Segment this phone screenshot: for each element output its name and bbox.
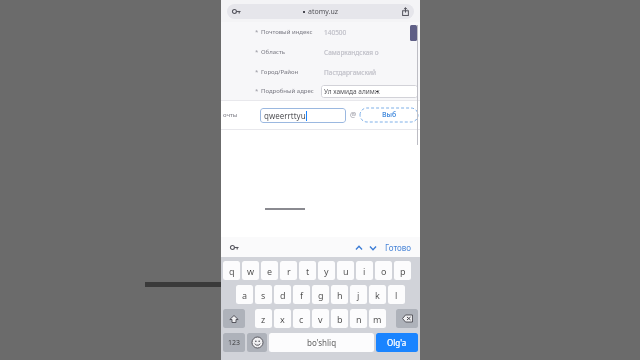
button[interactable]: i xyxy=(356,261,373,280)
staticText: u xyxy=(343,265,349,277)
button[interactable]: z xyxy=(255,309,272,328)
button[interactable]: Самаркандская о xyxy=(321,46,418,59)
staticText: c xyxy=(299,313,304,325)
staticText: qweerrttyu xyxy=(264,110,306,121)
staticText: Ул хамида алимж xyxy=(324,87,380,96)
staticText: Выб xyxy=(382,110,397,120)
staticText: e xyxy=(267,265,273,277)
button[interactable]: r xyxy=(280,261,297,280)
button[interactable]: 140500 xyxy=(321,26,418,39)
staticText: Почтовый индекс xyxy=(261,28,313,36)
staticText: * xyxy=(255,48,259,56)
button[interactable]: k xyxy=(369,285,386,304)
button[interactable]: v xyxy=(312,309,329,328)
button[interactable]: atomy.uz xyxy=(227,4,414,19)
button[interactable]: u xyxy=(337,261,354,280)
staticText: h xyxy=(337,289,343,301)
button[interactable]: f xyxy=(293,285,310,304)
button[interactable]: h xyxy=(331,285,348,304)
staticText: p xyxy=(400,265,406,277)
button[interactable]: Passwords xyxy=(228,241,240,253)
staticText: t xyxy=(306,265,310,277)
button[interactable]: Shift xyxy=(223,309,245,328)
staticText: b xyxy=(337,313,343,325)
staticText: f xyxy=(300,289,304,301)
staticText: d xyxy=(280,289,286,301)
staticText: * xyxy=(255,68,259,76)
staticText: w xyxy=(247,265,255,277)
staticText: z xyxy=(261,313,266,325)
button[interactable]: Пастдаргамский xyxy=(321,66,418,79)
button[interactable]: j xyxy=(350,285,367,304)
button[interactable]: Backspace xyxy=(396,309,418,328)
staticText: n xyxy=(356,313,362,325)
button[interactable]: y xyxy=(318,261,335,280)
button[interactable]: w xyxy=(242,261,259,280)
button[interactable]: Ул хамида алимж xyxy=(321,85,418,98)
button[interactable]: m xyxy=(369,309,386,328)
button[interactable]: o xyxy=(375,261,392,280)
staticText: o xyxy=(381,265,387,277)
button[interactable]: Previous xyxy=(352,241,366,255)
button[interactable]: Passwords xyxy=(230,5,242,17)
button[interactable]: c xyxy=(293,309,310,328)
staticText: k xyxy=(375,289,380,301)
button[interactable]: Emoji xyxy=(247,333,267,352)
staticText: i xyxy=(363,265,366,277)
staticText: Пастдаргамский xyxy=(324,68,377,77)
staticText: m xyxy=(373,313,382,325)
staticText: Самаркандская о xyxy=(324,48,379,57)
staticText: a xyxy=(242,289,248,301)
staticText: x xyxy=(280,313,285,325)
button[interactable]: s xyxy=(255,285,272,304)
button[interactable]: 123 xyxy=(223,333,245,352)
button[interactable]: Share xyxy=(399,5,411,17)
staticText: g xyxy=(318,289,324,301)
button[interactable]: Next xyxy=(366,241,380,255)
staticText: 140500 xyxy=(324,28,347,37)
staticText: Подробный адрес xyxy=(261,87,314,95)
staticText: Город/Район xyxy=(261,68,299,76)
staticText: atomy.uz xyxy=(308,7,339,17)
button[interactable]: n xyxy=(350,309,367,328)
staticText: Область xyxy=(261,48,286,56)
staticText: @ xyxy=(350,110,357,120)
staticText: y xyxy=(324,265,329,277)
button[interactable]: Готово xyxy=(383,239,414,256)
button[interactable]: g xyxy=(312,285,329,304)
button[interactable]: Выб xyxy=(360,108,418,122)
staticText: v xyxy=(318,313,323,325)
button[interactable]: l xyxy=(388,285,405,304)
button[interactable]: d xyxy=(274,285,291,304)
button[interactable]: b xyxy=(331,309,348,328)
button[interactable]: e xyxy=(261,261,278,280)
staticText: Готово xyxy=(385,242,412,253)
staticText: q xyxy=(229,265,235,277)
staticText: очты xyxy=(223,111,238,119)
button[interactable]: x xyxy=(274,309,291,328)
staticText: r xyxy=(287,265,291,277)
staticText: l xyxy=(395,289,398,301)
button[interactable]: Olg'a xyxy=(376,333,418,352)
staticText: * xyxy=(255,87,259,95)
button[interactable]: bo'shliq xyxy=(269,333,374,352)
staticText: j xyxy=(357,289,360,301)
button[interactable]: p xyxy=(394,261,411,280)
staticText: bo'shliq xyxy=(307,337,337,348)
staticText: s xyxy=(261,289,266,301)
staticText: 123 xyxy=(228,338,241,348)
button[interactable]: qweerrttyu xyxy=(260,108,346,123)
button[interactable]: q xyxy=(223,261,240,280)
button[interactable]: a xyxy=(236,285,253,304)
staticText: * xyxy=(255,28,259,36)
button[interactable]: t xyxy=(299,261,316,280)
staticText: Olg'a xyxy=(387,337,407,348)
